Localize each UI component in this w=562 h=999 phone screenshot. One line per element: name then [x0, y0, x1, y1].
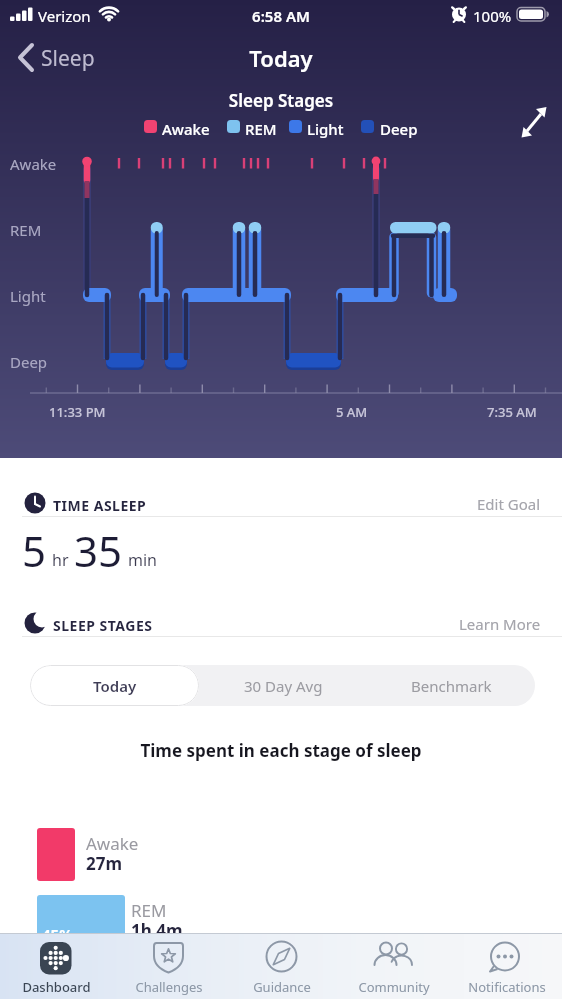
staticText: Dashboard — [22, 978, 91, 996]
staticText: 7:35 AM — [487, 403, 537, 421]
staticText: Deep — [10, 352, 48, 372]
staticText: Today — [0, 43, 562, 73]
button[interactable]: Today — [30, 665, 199, 706]
staticText: REM — [131, 899, 167, 922]
staticText: Awake — [10, 154, 57, 174]
staticText: 30 Day Avg — [244, 676, 323, 696]
staticText: Deep — [380, 119, 418, 139]
staticText: 100% — [473, 6, 512, 26]
staticText: Today — [93, 676, 137, 696]
button[interactable] — [0, 933, 112, 999]
button[interactable] — [337, 933, 449, 999]
staticText: REM — [10, 220, 42, 240]
staticText: Awake — [162, 119, 210, 139]
button[interactable]: Benchmark — [367, 665, 535, 706]
staticText: 27m — [86, 852, 123, 875]
staticText: 6:58 AM — [0, 6, 562, 26]
staticText: Sleep Stages — [0, 89, 562, 112]
staticText: Sleep — [41, 44, 95, 73]
staticText: 45% — [42, 924, 73, 944]
staticText: 11:33 PM — [49, 403, 106, 421]
staticText: Benchmark — [411, 676, 492, 696]
staticText: hr — [52, 549, 69, 571]
staticText: 35 — [74, 522, 123, 579]
staticText: Guidance — [253, 978, 311, 996]
button[interactable]: Learn More — [459, 614, 541, 634]
staticText: 1h 4m — [131, 919, 183, 942]
staticText: SLEEP STAGES — [53, 616, 153, 635]
staticText: Light — [10, 286, 46, 306]
staticText: Awake — [86, 832, 139, 855]
button[interactable] — [8, 36, 108, 78]
button[interactable]: 30 Day Avg — [199, 665, 367, 706]
staticText: min — [128, 549, 157, 571]
staticText: Time spent in each stage of sleep — [0, 739, 562, 762]
staticText: Light — [307, 119, 344, 139]
button[interactable] — [225, 933, 337, 999]
staticText: Challenges — [135, 978, 203, 996]
staticText: Verizon — [38, 6, 91, 26]
staticText: REM — [245, 119, 277, 139]
staticText: 5 — [22, 522, 47, 579]
staticText: Community — [358, 978, 430, 996]
button[interactable]: Edit Goal — [477, 494, 541, 514]
button[interactable] — [510, 98, 556, 144]
staticText: 5 AM — [336, 403, 368, 421]
button[interactable] — [450, 933, 562, 999]
button[interactable] — [112, 933, 224, 999]
staticText: Notifications — [468, 978, 546, 996]
staticText: TIME ASLEEP — [53, 496, 147, 515]
